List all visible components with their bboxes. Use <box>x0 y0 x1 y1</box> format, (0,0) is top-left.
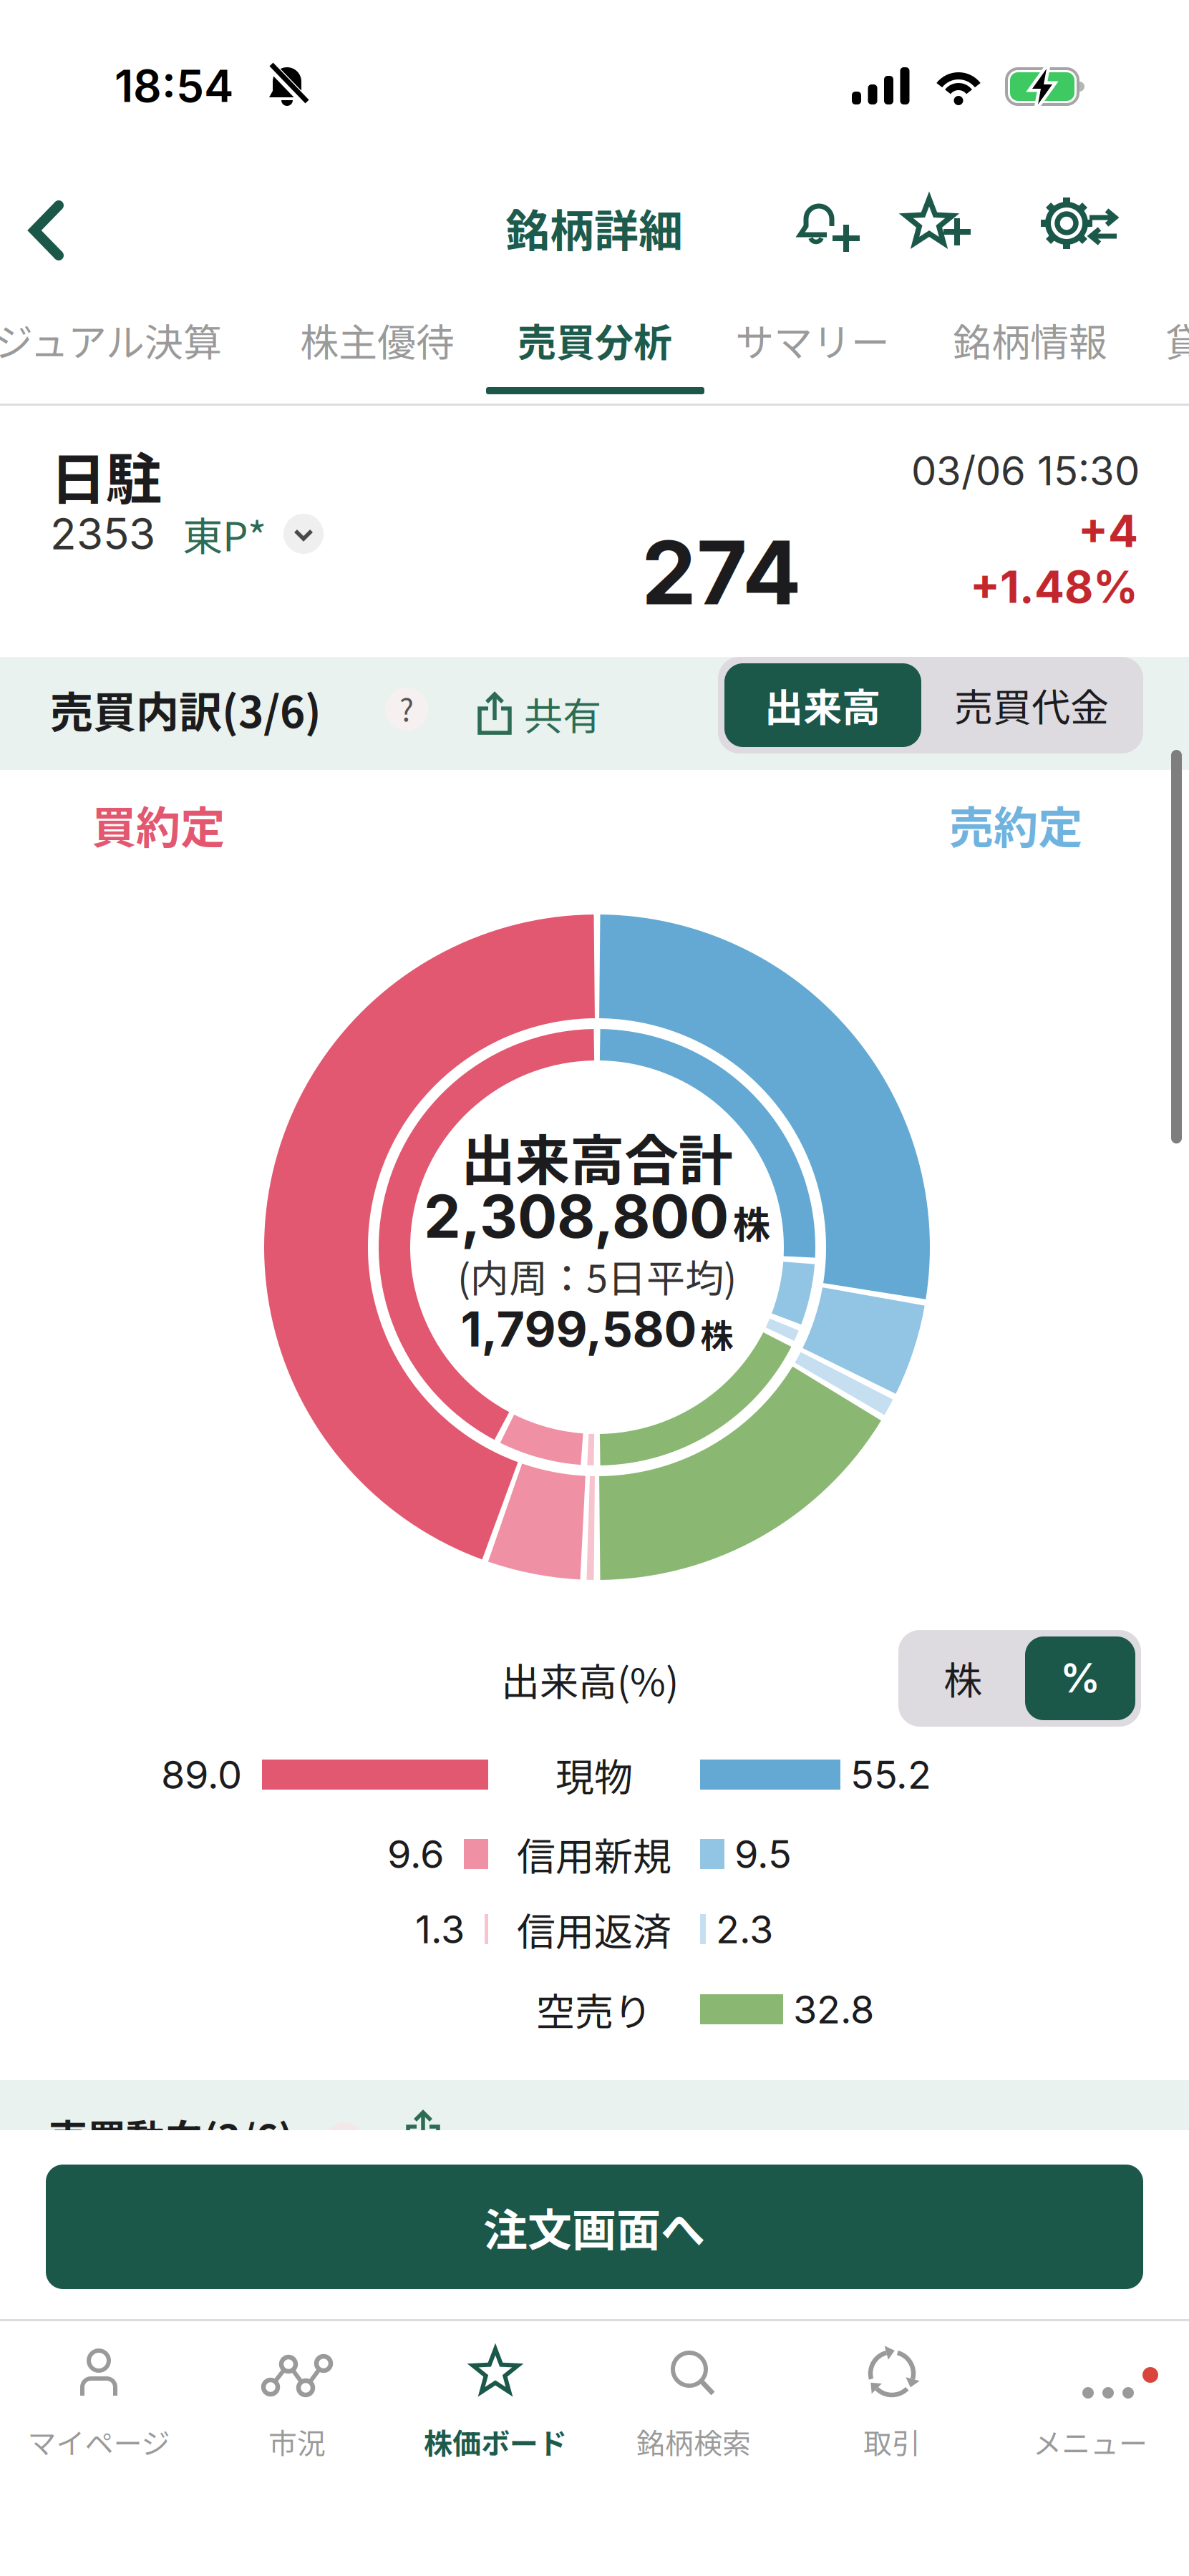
staticText: メニュー <box>1033 2421 1147 2462</box>
staticText: 売買内訳(3/6) <box>50 678 321 740</box>
staticText: 株価ボード <box>424 2421 567 2462</box>
staticText: 2,308,800 <box>424 1181 729 1252</box>
button[interactable]: 株価ボード <box>397 2347 594 2469</box>
staticText: サマリー <box>735 312 890 368</box>
staticText: 売買分析 <box>518 312 672 368</box>
button[interactable]: 取引 <box>793 2347 991 2469</box>
staticText: 貸 <box>1165 312 1189 368</box>
button[interactable]: 市況 <box>198 2347 396 2469</box>
staticText: 9.6 <box>387 1831 444 1877</box>
staticText: 市況 <box>268 2421 326 2462</box>
staticText: 株 <box>733 1195 770 1249</box>
staticText: +1.48% <box>970 560 1138 614</box>
staticText: 銘柄検索 <box>636 2421 751 2462</box>
staticText: ジュアル決算 <box>0 312 222 368</box>
staticText: 東P* <box>183 505 266 563</box>
staticText: 55.2 <box>850 1751 931 1798</box>
button[interactable]: Back <box>14 195 79 266</box>
staticText: 2.3 <box>716 1906 773 1952</box>
button[interactable]: 通知を追加 <box>797 195 863 260</box>
staticText: 買約定 <box>92 792 225 856</box>
staticText: 32.8 <box>793 1986 874 2033</box>
staticText: 信用新規 <box>517 1826 671 1882</box>
staticText: 03/06 15:30 <box>911 447 1140 495</box>
staticText: 共有 <box>524 686 601 741</box>
staticText: 空売り <box>536 1981 652 2037</box>
button[interactable]: 出来高 <box>724 663 921 747</box>
staticText: 銘柄情報 <box>953 312 1107 368</box>
button[interactable]: 設定 <box>1039 195 1120 260</box>
staticText: 2353 <box>50 508 155 560</box>
button[interactable]: マイページ <box>0 2347 198 2469</box>
button[interactable]: 共有 <box>472 686 601 741</box>
staticText: 日駐 <box>50 435 162 515</box>
staticText: 売約定 <box>949 792 1082 856</box>
staticText: マイページ <box>28 2421 170 2462</box>
button[interactable]: 注文画面へ <box>46 2165 1143 2289</box>
staticText: (内周：5日平均) <box>457 1248 737 1304</box>
staticText: 現物 <box>555 1747 633 1803</box>
staticText: 株主優待 <box>300 312 455 368</box>
button[interactable]: お気に入りに追加 <box>903 195 972 260</box>
staticText: 89.0 <box>161 1751 242 1798</box>
staticText: 取引 <box>863 2421 921 2462</box>
staticText: 18:54 <box>115 59 233 113</box>
staticText: 9.5 <box>734 1831 792 1877</box>
staticText: % <box>1060 1654 1100 1702</box>
staticText: 1.3 <box>415 1906 465 1952</box>
button[interactable]: 銘柄検索 <box>595 2347 792 2469</box>
button[interactable]: 株 <box>898 1630 1006 1714</box>
staticText: 株 <box>700 1310 733 1358</box>
staticText: 出来高合計 <box>461 1117 733 1196</box>
button[interactable]: 市場を選択 <box>283 514 324 554</box>
staticText: 株 <box>943 1650 982 1706</box>
staticText: ? <box>399 687 414 730</box>
staticText: 売買動向(3/6) <box>49 2108 293 2164</box>
staticText: 信用返済 <box>517 1901 671 1957</box>
staticText: 出来高(%) <box>501 1651 679 1707</box>
staticText: 売買代金 <box>954 677 1109 733</box>
button[interactable]: ヘルプ <box>385 688 428 731</box>
staticText: 1,799,580 <box>461 1299 697 1358</box>
button[interactable]: メニュー <box>991 2347 1189 2469</box>
staticText: 注文画面へ <box>483 2195 705 2259</box>
staticText: 銘柄詳細 <box>505 195 683 260</box>
button[interactable]: 売買代金 <box>718 657 933 741</box>
staticText: +4 <box>1078 504 1138 558</box>
button[interactable]: % <box>898 1630 1009 1714</box>
staticText: 出来高 <box>765 677 880 733</box>
staticText: 274 <box>641 520 802 625</box>
